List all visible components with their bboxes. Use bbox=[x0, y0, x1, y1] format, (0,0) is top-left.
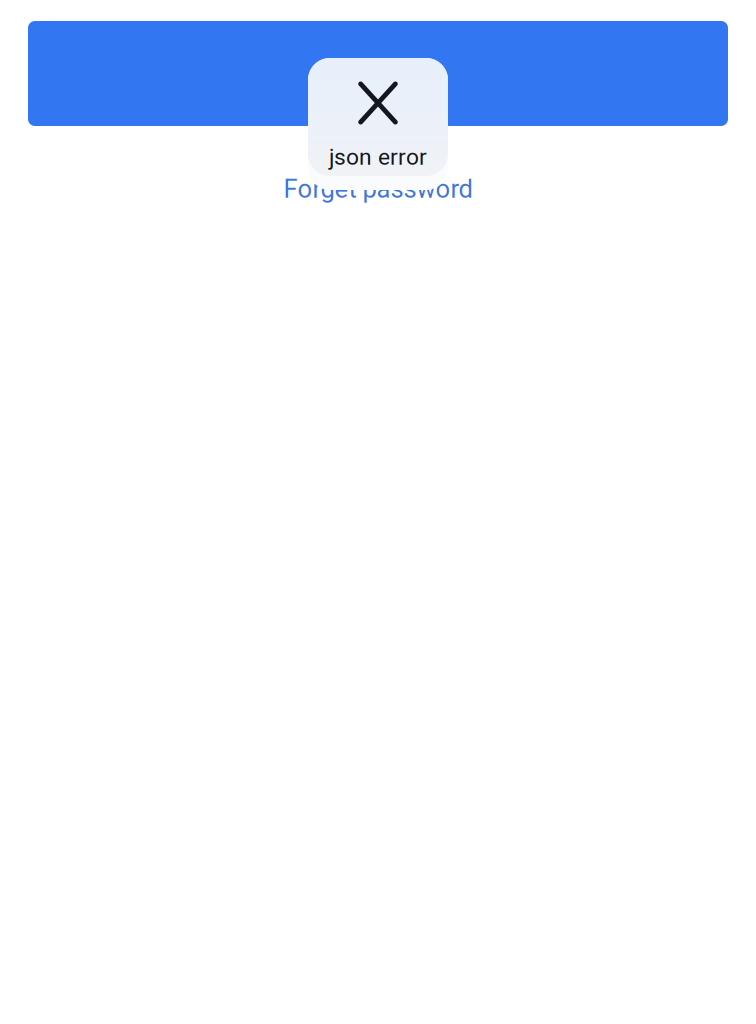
button[interactable] bbox=[28, 21, 728, 126]
button[interactable]: Forget password bbox=[0, 175, 756, 203]
staticText: Forget password bbox=[283, 174, 472, 204]
staticText: json error bbox=[329, 144, 427, 170]
